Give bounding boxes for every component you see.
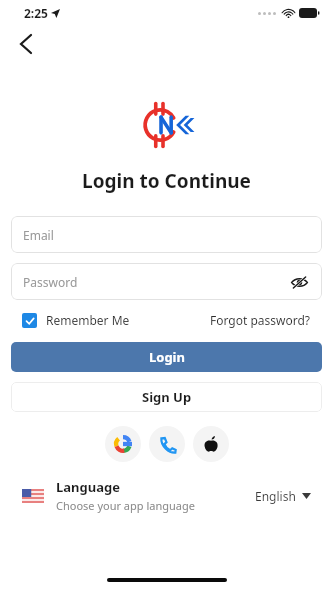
staticText: English xyxy=(255,488,296,504)
staticText: Email xyxy=(23,227,310,243)
button[interactable]: Show password xyxy=(288,271,310,293)
button[interactable]: English xyxy=(255,488,311,504)
button[interactable]: Remember Me xyxy=(22,312,130,328)
button[interactable]: Sign in with Google xyxy=(105,426,141,462)
staticText: Forgot password? xyxy=(210,312,311,328)
staticText: Remember Me xyxy=(46,312,130,328)
staticText: Login to Continue xyxy=(0,168,333,194)
staticText: Password xyxy=(23,274,288,290)
button[interactable]: Login xyxy=(11,342,322,372)
staticText: Sign Up xyxy=(142,388,192,406)
staticText: 2:25 xyxy=(24,5,48,21)
button[interactable]: Sign Up xyxy=(11,382,322,412)
staticText: Choose your app language xyxy=(56,498,195,513)
button[interactable]: Language xyxy=(22,478,311,513)
button[interactable]: Sign in with phone xyxy=(149,426,185,462)
button[interactable]: Back xyxy=(8,26,44,62)
staticText: Login xyxy=(149,348,185,366)
button[interactable]: Email xyxy=(11,216,322,253)
button[interactable]: Password xyxy=(11,263,322,300)
button[interactable]: Forgot password? xyxy=(210,312,311,328)
button[interactable]: Sign in with Apple xyxy=(193,426,229,462)
staticText: Language xyxy=(56,478,120,496)
